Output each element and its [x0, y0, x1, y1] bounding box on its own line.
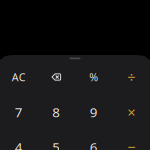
staticText: 9 [90, 103, 98, 121]
button[interactable]: Delete [37, 59, 75, 94]
staticText: 8 [52, 103, 60, 121]
button[interactable]: 7 [0, 94, 37, 129]
button[interactable]: × [112, 94, 150, 129]
button[interactable]: 4 [0, 129, 37, 150]
staticText: 4 [15, 138, 23, 150]
button[interactable]: 6 [75, 129, 112, 150]
button[interactable]: AC [0, 59, 37, 94]
staticText: % [89, 70, 98, 84]
staticText: 5 [52, 138, 60, 150]
button[interactable]: 8 [37, 94, 75, 129]
button[interactable]: 5 [37, 129, 75, 150]
button[interactable]: % [75, 59, 112, 94]
button[interactable]: 9 [75, 94, 112, 129]
button[interactable]: ÷ [112, 59, 150, 94]
staticText: − [127, 137, 135, 150]
staticText: × [127, 102, 135, 122]
staticText: AC [12, 70, 26, 84]
button[interactable]: − [112, 129, 150, 150]
staticText: ÷ [127, 67, 135, 87]
staticText: 7 [15, 103, 23, 121]
staticText: 6 [90, 138, 98, 150]
